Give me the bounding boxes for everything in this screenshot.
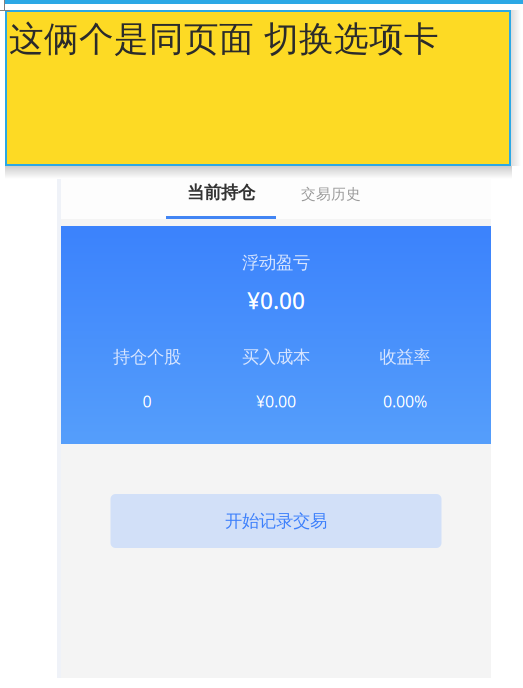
button[interactable]: 当前持仓 — [166, 170, 276, 219]
staticText: ¥0.00 — [256, 391, 296, 412]
staticText: 买入成本 — [242, 346, 310, 368]
staticText: 开始记录交易 — [225, 510, 327, 532]
staticText: 这俩个是同页面 切换选项卡 — [9, 18, 439, 61]
staticText: 0 — [142, 391, 151, 412]
staticText: 持仓个股 — [113, 346, 181, 368]
staticText: 收益率 — [379, 346, 430, 368]
staticText: 当前持仓 — [187, 182, 255, 203]
button[interactable]: 开始记录交易 — [110, 494, 441, 548]
staticText: 交易历史 — [301, 185, 361, 203]
button[interactable]: 交易历史 — [276, 170, 386, 219]
staticText: ¥0.00 — [247, 285, 305, 315]
staticText: 浮动盈亏 — [242, 252, 310, 273]
staticText: 0.00% — [383, 391, 427, 412]
